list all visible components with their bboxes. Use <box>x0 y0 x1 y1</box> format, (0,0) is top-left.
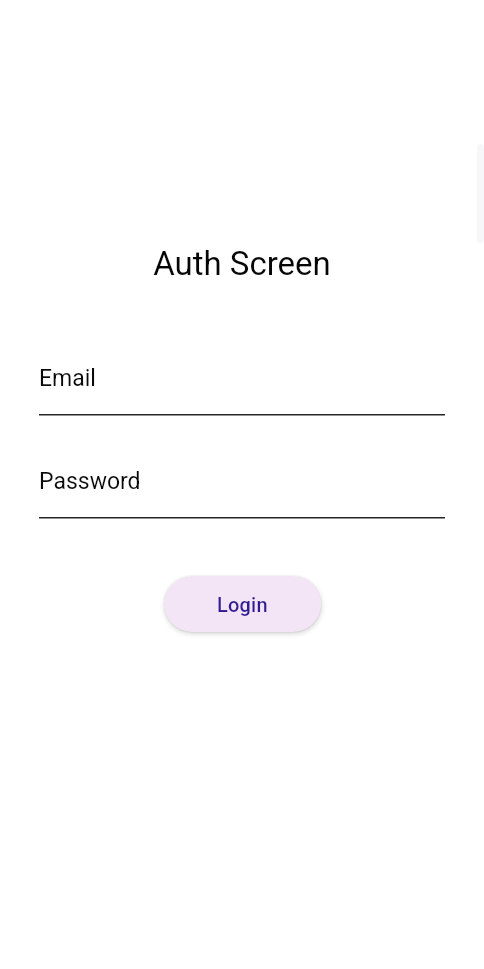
staticText: Login <box>217 593 268 616</box>
button[interactable]: Password <box>39 468 445 519</box>
staticText: Auth Screen <box>153 244 331 283</box>
staticText: Email <box>39 365 96 392</box>
button[interactable]: Login <box>164 576 321 632</box>
staticText: Password <box>39 468 141 495</box>
button[interactable]: Email <box>39 365 445 416</box>
